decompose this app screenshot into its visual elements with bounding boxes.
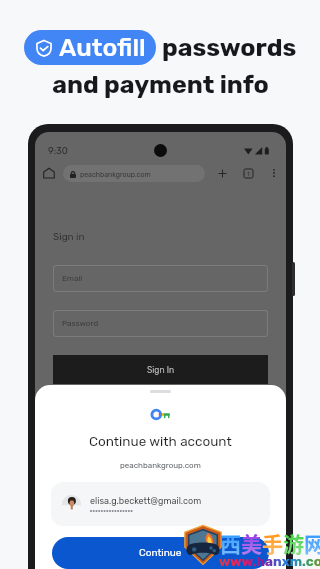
staticText: 1 (247, 170, 250, 177)
button[interactable]: New tab (217, 168, 228, 179)
staticText: 手 (262, 528, 283, 558)
button[interactable]: peachbankgroup.com (63, 165, 205, 182)
staticText: Continue with account (89, 433, 232, 449)
staticText: peachbankgroup.com (80, 170, 151, 178)
button[interactable]: Tabs (243, 168, 254, 179)
staticText: elisa.g.beckett@gmail.com (90, 496, 202, 507)
staticText: Sign In (147, 365, 175, 375)
staticText: and payment info (52, 70, 269, 100)
staticText: 游 (283, 528, 304, 558)
staticText: 美 (241, 528, 262, 558)
staticText: 西 (220, 528, 241, 558)
button[interactable]: elisa.g.beckett@gmail.com (51, 482, 270, 526)
staticText: Password (62, 319, 99, 328)
staticText: 网 (304, 528, 320, 558)
button[interactable]: More options (269, 168, 279, 178)
button[interactable]: Continue (52, 537, 269, 569)
staticText: passwords (162, 33, 297, 63)
staticText: Autofill (59, 33, 146, 63)
button[interactable]: Home (43, 167, 55, 179)
staticText: www.hanxm.com (219, 553, 320, 569)
button[interactable]: Sign In (53, 355, 268, 384)
button[interactable]: Autofill (24, 30, 156, 65)
staticText: 9:30 (48, 145, 68, 155)
staticText: peachbankgroup.com (120, 461, 201, 470)
staticText: Email (62, 274, 83, 283)
staticText: Continue (139, 547, 182, 559)
staticText: Sign in (53, 231, 85, 243)
